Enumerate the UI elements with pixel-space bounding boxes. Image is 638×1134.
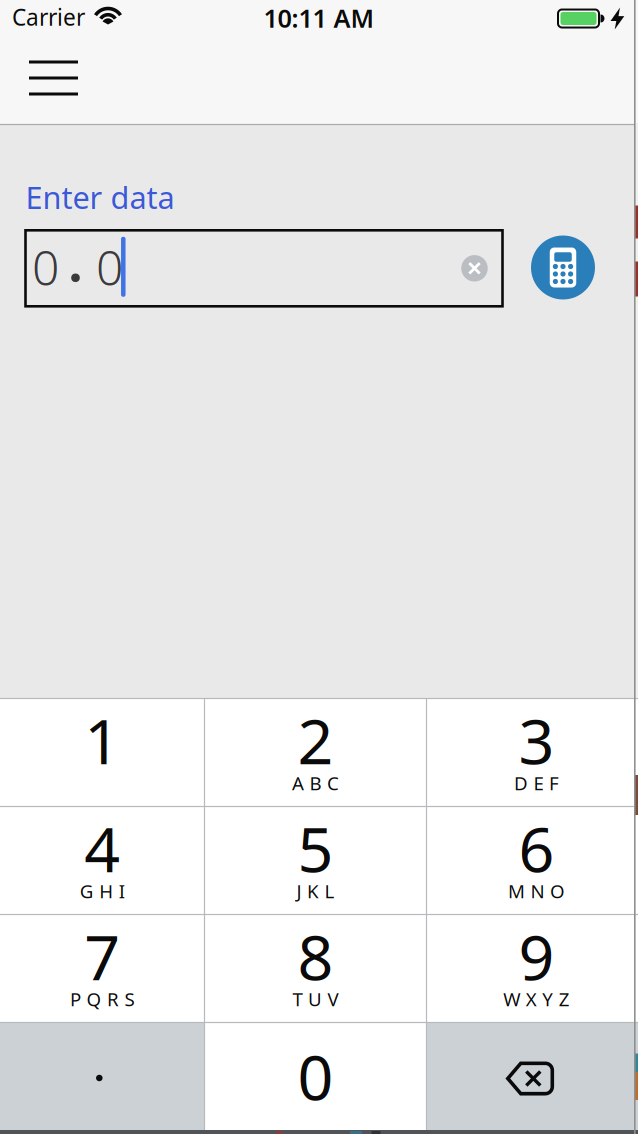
button[interactable]: Delete — [427, 1023, 638, 1130]
staticText: MNO — [508, 879, 565, 903]
staticText: 1 — [84, 698, 120, 782]
button[interactable]: Decimal point — [0, 1023, 204, 1130]
staticText: 5 — [297, 806, 333, 890]
button[interactable]: 1 — [0, 699, 204, 806]
staticText: 8 — [297, 914, 333, 998]
staticText: ABC — [292, 771, 339, 795]
staticText: 10:11 AM — [263, 1, 374, 35]
button[interactable]: 7 — [0, 915, 204, 1022]
staticText: WXYZ — [503, 987, 570, 1011]
staticText: DEF — [514, 771, 559, 795]
button[interactable]: Menu — [29, 60, 78, 96]
staticText: 9 — [518, 914, 554, 998]
staticText: 0 — [96, 235, 123, 299]
staticText: Enter data — [25, 177, 174, 217]
button[interactable]: 8 — [205, 915, 426, 1022]
button[interactable]: 6 — [431, 807, 638, 914]
staticText: JKL — [296, 879, 334, 903]
button[interactable]: 4 — [0, 807, 204, 914]
staticText: 0 — [32, 235, 59, 299]
staticText: 3 — [518, 698, 554, 782]
staticText: 0 — [297, 1034, 333, 1118]
button[interactable]: 9 — [431, 915, 638, 1022]
staticText: GHI — [80, 879, 125, 903]
staticText: 7 — [84, 914, 120, 998]
staticText: 4 — [84, 806, 120, 890]
staticText: TUV — [292, 987, 338, 1011]
staticText: PQRS — [70, 987, 134, 1011]
button[interactable]: 3 — [431, 699, 638, 806]
button[interactable]: Calculator — [531, 235, 595, 299]
staticText: Carrier — [12, 2, 85, 32]
button[interactable]: 5 — [205, 807, 426, 914]
button[interactable]: 2 — [205, 699, 426, 806]
button[interactable]: 0 — [205, 1023, 426, 1130]
staticText: 6 — [518, 806, 554, 890]
button[interactable]: Clear text — [461, 255, 488, 282]
staticText: 2 — [297, 698, 333, 782]
